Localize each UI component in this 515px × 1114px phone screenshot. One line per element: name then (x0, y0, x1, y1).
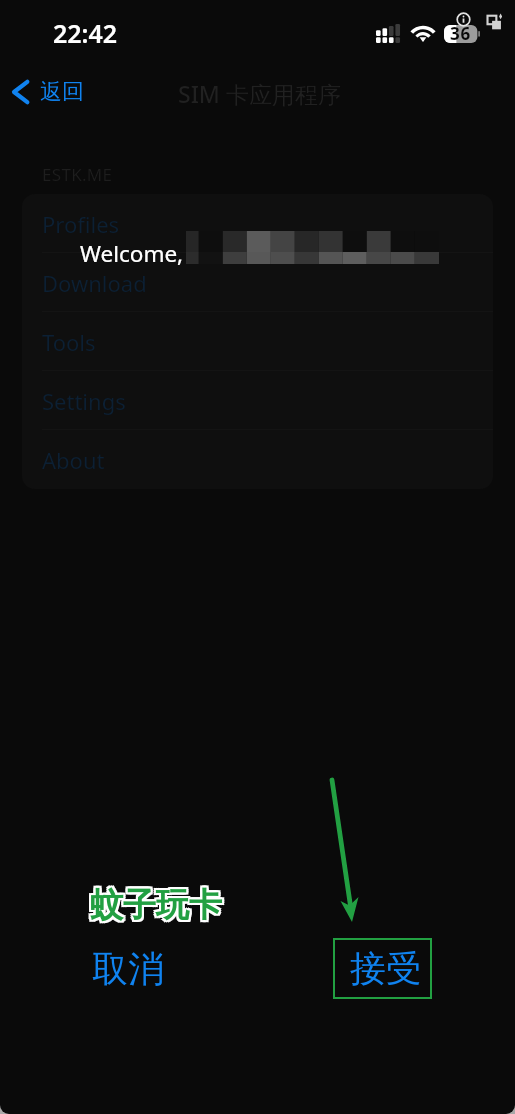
button[interactable]: 接受 (333, 938, 432, 999)
staticText: 蚊子玩卡 (92, 882, 224, 924)
button[interactable]: 返回 (4, 72, 92, 112)
staticText: Settings (42, 386, 126, 416)
staticText: ESTK.ME (42, 163, 113, 186)
button[interactable]: About (22, 430, 493, 489)
button[interactable]: Settings (22, 371, 493, 430)
staticText: 蚊子玩卡 (88, 886, 220, 928)
staticText: About (42, 445, 105, 475)
staticText: 蚊子玩卡 (90, 884, 222, 926)
staticText: 蚊子玩卡 (88, 884, 220, 926)
staticText: 蚊子玩卡 (92, 884, 224, 926)
staticText: 取消 (92, 946, 164, 991)
staticText: 36 (450, 22, 472, 45)
staticText: Tools (42, 327, 96, 357)
other: Screen mirroring (487, 13, 504, 30)
staticText: 蚊子玩卡 (90, 882, 222, 924)
staticText: 返回 (40, 78, 84, 106)
staticText: SIM 卡应用程序 (178, 78, 341, 109)
staticText: Welcome, (80, 238, 184, 269)
staticText: 蚊子玩卡 (90, 886, 222, 928)
staticText: 22:42 (53, 16, 118, 50)
staticText: Download (42, 268, 147, 298)
staticText: Profiles (42, 209, 120, 239)
button[interactable]: 取消 (82, 938, 174, 999)
staticText: 蚊子玩卡 (88, 882, 220, 924)
button[interactable]: Download (22, 253, 493, 312)
staticText: 蚊子玩卡 (92, 886, 224, 928)
button[interactable]: Profiles (22, 194, 493, 253)
staticText: 接受 (350, 946, 422, 991)
